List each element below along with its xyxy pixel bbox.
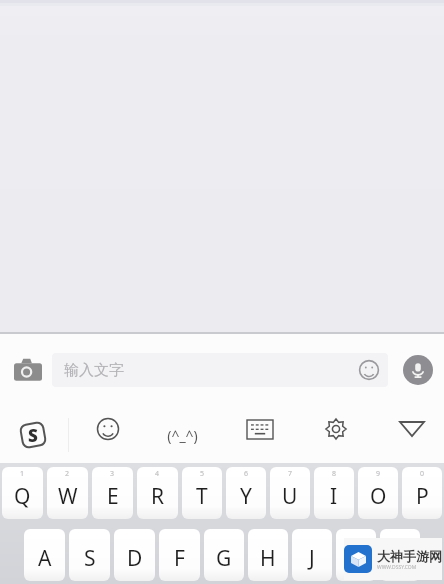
staticText: J xyxy=(309,544,315,573)
button[interactable]: Emoticons xyxy=(85,406,131,452)
button[interactable]: Sogou input settings xyxy=(10,412,56,458)
button[interactable]: 3 xyxy=(92,467,133,519)
staticText: F xyxy=(174,544,185,573)
button[interactable]: Emoji xyxy=(356,357,382,383)
staticText: 2 xyxy=(65,469,70,479)
button[interactable]: H xyxy=(248,529,288,581)
staticText: S xyxy=(28,424,38,447)
button[interactable]: 5 xyxy=(182,467,222,519)
staticText: Q xyxy=(14,482,31,511)
staticText: S xyxy=(84,544,96,573)
staticText: 6 xyxy=(244,469,249,479)
button[interactable]: 大神手游网 xyxy=(344,538,442,580)
staticText: WWW.DSSY.COM xyxy=(377,564,417,571)
button[interactable]: Voice input xyxy=(398,350,438,390)
staticText: R xyxy=(151,482,165,511)
button[interactable]: A xyxy=(24,529,65,581)
button[interactable]: G xyxy=(204,529,244,581)
staticText: 7 xyxy=(288,469,293,479)
staticText: I xyxy=(330,482,338,511)
staticText: H xyxy=(260,544,276,573)
button[interactable]: 7 xyxy=(270,467,310,519)
button[interactable]: 2 xyxy=(47,467,88,519)
staticText: G xyxy=(216,544,232,573)
button[interactable]: K xyxy=(336,529,376,581)
button[interactable]: 0 xyxy=(402,467,442,519)
button[interactable]: 8 xyxy=(314,467,354,519)
staticText: P xyxy=(416,482,429,511)
staticText: 9 xyxy=(376,469,381,479)
staticText: 3 xyxy=(110,469,115,479)
button[interactable]: Switch keyboard xyxy=(237,406,283,452)
staticText: 1 xyxy=(20,469,25,479)
staticText: O xyxy=(370,482,387,511)
button[interactable]: D xyxy=(114,529,155,581)
button[interactable]: Settings xyxy=(313,406,359,452)
staticText: Y xyxy=(240,482,252,511)
button[interactable]: 9 xyxy=(358,467,398,519)
button[interactable]: 4 xyxy=(137,467,178,519)
button[interactable]: (^_^) xyxy=(156,412,208,458)
button[interactable]: Camera xyxy=(8,350,48,390)
staticText: D xyxy=(127,544,143,573)
staticText: A xyxy=(38,544,52,573)
staticText: L xyxy=(394,544,406,573)
staticText: 大神手游网 xyxy=(377,548,442,564)
button[interactable]: Hide keyboard xyxy=(389,406,435,452)
staticText: K xyxy=(350,544,363,573)
staticText: 5 xyxy=(200,469,205,479)
button[interactable]: J xyxy=(292,529,332,581)
staticText: E xyxy=(107,482,119,511)
button[interactable]: 输入文字 xyxy=(52,353,388,387)
button[interactable]: S xyxy=(69,529,110,581)
button[interactable]: F xyxy=(159,529,200,581)
staticText: U xyxy=(282,482,298,511)
staticText: 0 xyxy=(420,469,425,479)
staticText: W xyxy=(58,482,78,511)
staticText: T xyxy=(196,482,208,511)
staticText: 输入文字 xyxy=(64,361,124,380)
button[interactable]: L xyxy=(380,529,420,581)
staticText: 4 xyxy=(155,469,160,479)
button[interactable]: 6 xyxy=(226,467,266,519)
staticText: 8 xyxy=(332,469,337,479)
staticText: (^_^) xyxy=(167,426,198,445)
button[interactable]: 1 xyxy=(2,467,43,519)
